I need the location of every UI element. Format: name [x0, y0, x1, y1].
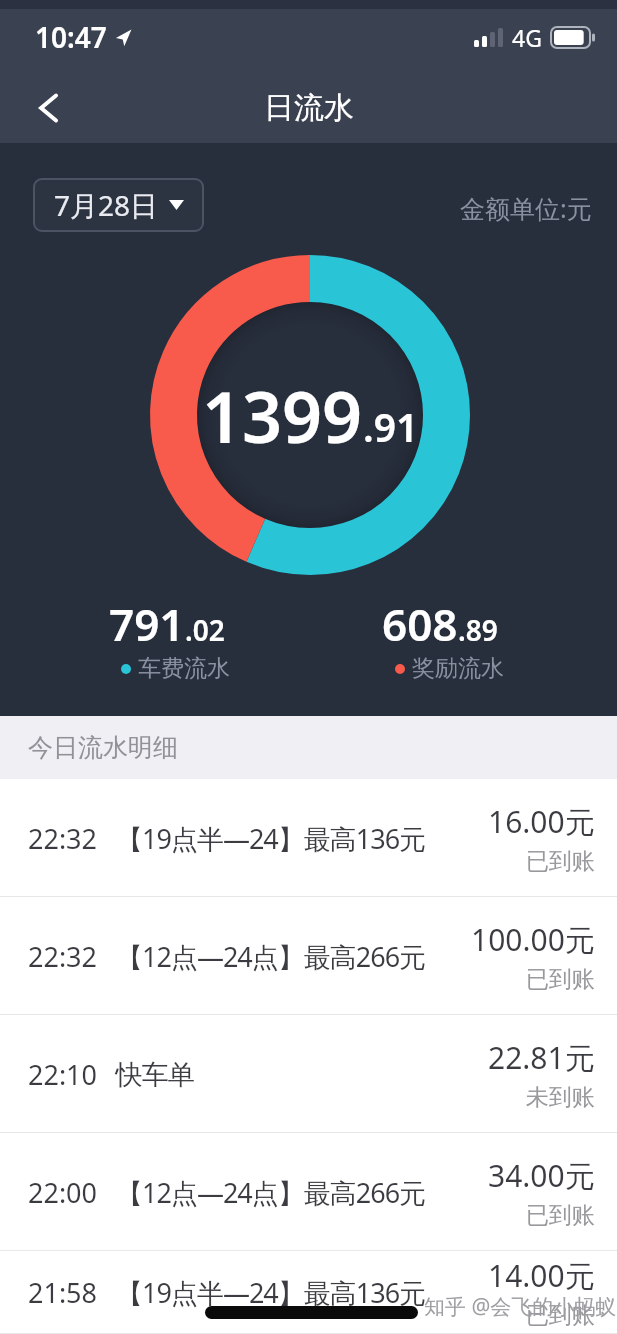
staticText: 22:32: [28, 820, 98, 857]
staticText: 100.00元: [471, 919, 595, 960]
staticText: 今日流水明细: [28, 732, 178, 763]
staticText: 7月28日: [54, 186, 159, 224]
staticText: 车费流水: [138, 654, 230, 683]
staticText: 4G: [512, 22, 542, 53]
staticText: 奖励流水: [412, 654, 504, 683]
staticText: 【12点—24点】最高266元: [116, 1174, 426, 1211]
staticText: 34.00元: [488, 1155, 595, 1196]
staticText: 21:58: [28, 1274, 98, 1311]
staticText: 16.00元: [488, 801, 595, 842]
staticText: 已到账: [526, 1301, 595, 1330]
staticText: 10:47: [35, 18, 107, 56]
staticText: 22:10: [28, 1056, 98, 1093]
staticText: 14.00元: [488, 1255, 595, 1296]
staticText: 已到账: [526, 965, 595, 994]
staticText: 1399: [202, 368, 363, 463]
staticText: 日流水: [264, 89, 354, 127]
staticText: 知乎 @会飞的小蚂蚁: [424, 1292, 617, 1321]
staticText: .89: [458, 611, 498, 649]
staticText: 快车单: [116, 1058, 194, 1092]
staticText: .02: [185, 611, 225, 649]
staticText: 金额单位:元: [460, 191, 592, 225]
staticText: 已到账: [526, 1201, 595, 1230]
staticText: 791: [109, 594, 185, 654]
staticText: 22:32: [28, 938, 98, 975]
staticText: 【12点—24点】最高266元: [116, 938, 426, 975]
staticText: 22:00: [28, 1174, 98, 1211]
staticText: 【19点半—24】最高136元: [116, 1274, 426, 1311]
staticText: 608: [382, 594, 458, 654]
staticText: .91: [363, 400, 419, 453]
staticText: 已到账: [526, 847, 595, 876]
staticText: 未到账: [526, 1083, 595, 1112]
staticText: 【19点半—24】最高136元: [116, 820, 426, 857]
staticText: 22.81元: [488, 1037, 595, 1078]
